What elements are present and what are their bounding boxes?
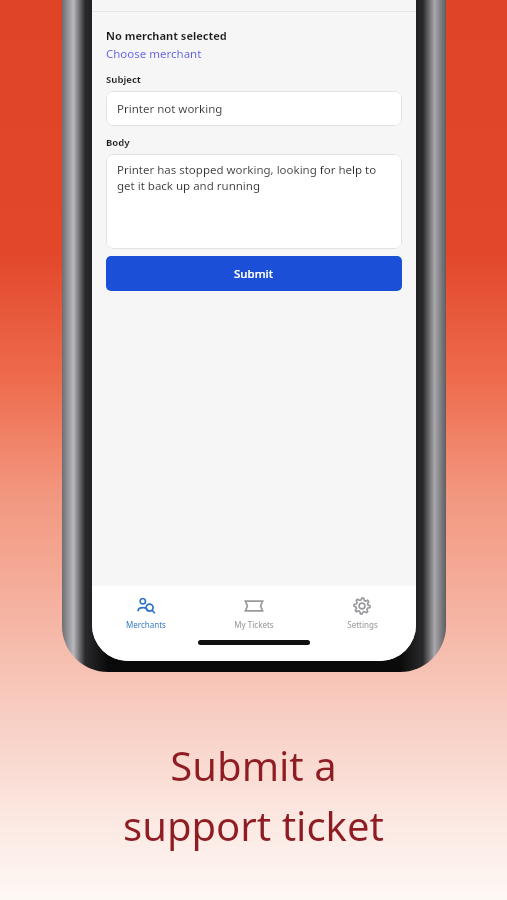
- button[interactable]: Choose merchant: [106, 46, 202, 62]
- button[interactable]: My Tickets: [200, 586, 308, 639]
- button[interactable]: Printer not working: [106, 91, 402, 126]
- staticText: Printer not working: [117, 101, 223, 117]
- button[interactable]: Merchants: [92, 586, 200, 639]
- staticText: My Tickets: [234, 619, 274, 630]
- staticText: No merchant selected: [106, 28, 227, 43]
- button[interactable]: Settings: [308, 586, 416, 639]
- staticText: Printer has stopped working, looking for…: [117, 162, 391, 193]
- staticText: Choose merchant: [106, 46, 202, 62]
- staticText: Submit: [234, 266, 274, 282]
- staticText: support ticket: [123, 798, 384, 852]
- staticText: Subject: [106, 73, 141, 86]
- staticText: Merchants: [126, 619, 166, 630]
- staticText: Submit a: [170, 738, 337, 792]
- staticText: Settings: [347, 619, 378, 630]
- staticText: Body: [106, 136, 130, 149]
- button[interactable]: Submit: [106, 256, 402, 291]
- button[interactable]: Printer has stopped working, looking for…: [106, 154, 402, 249]
